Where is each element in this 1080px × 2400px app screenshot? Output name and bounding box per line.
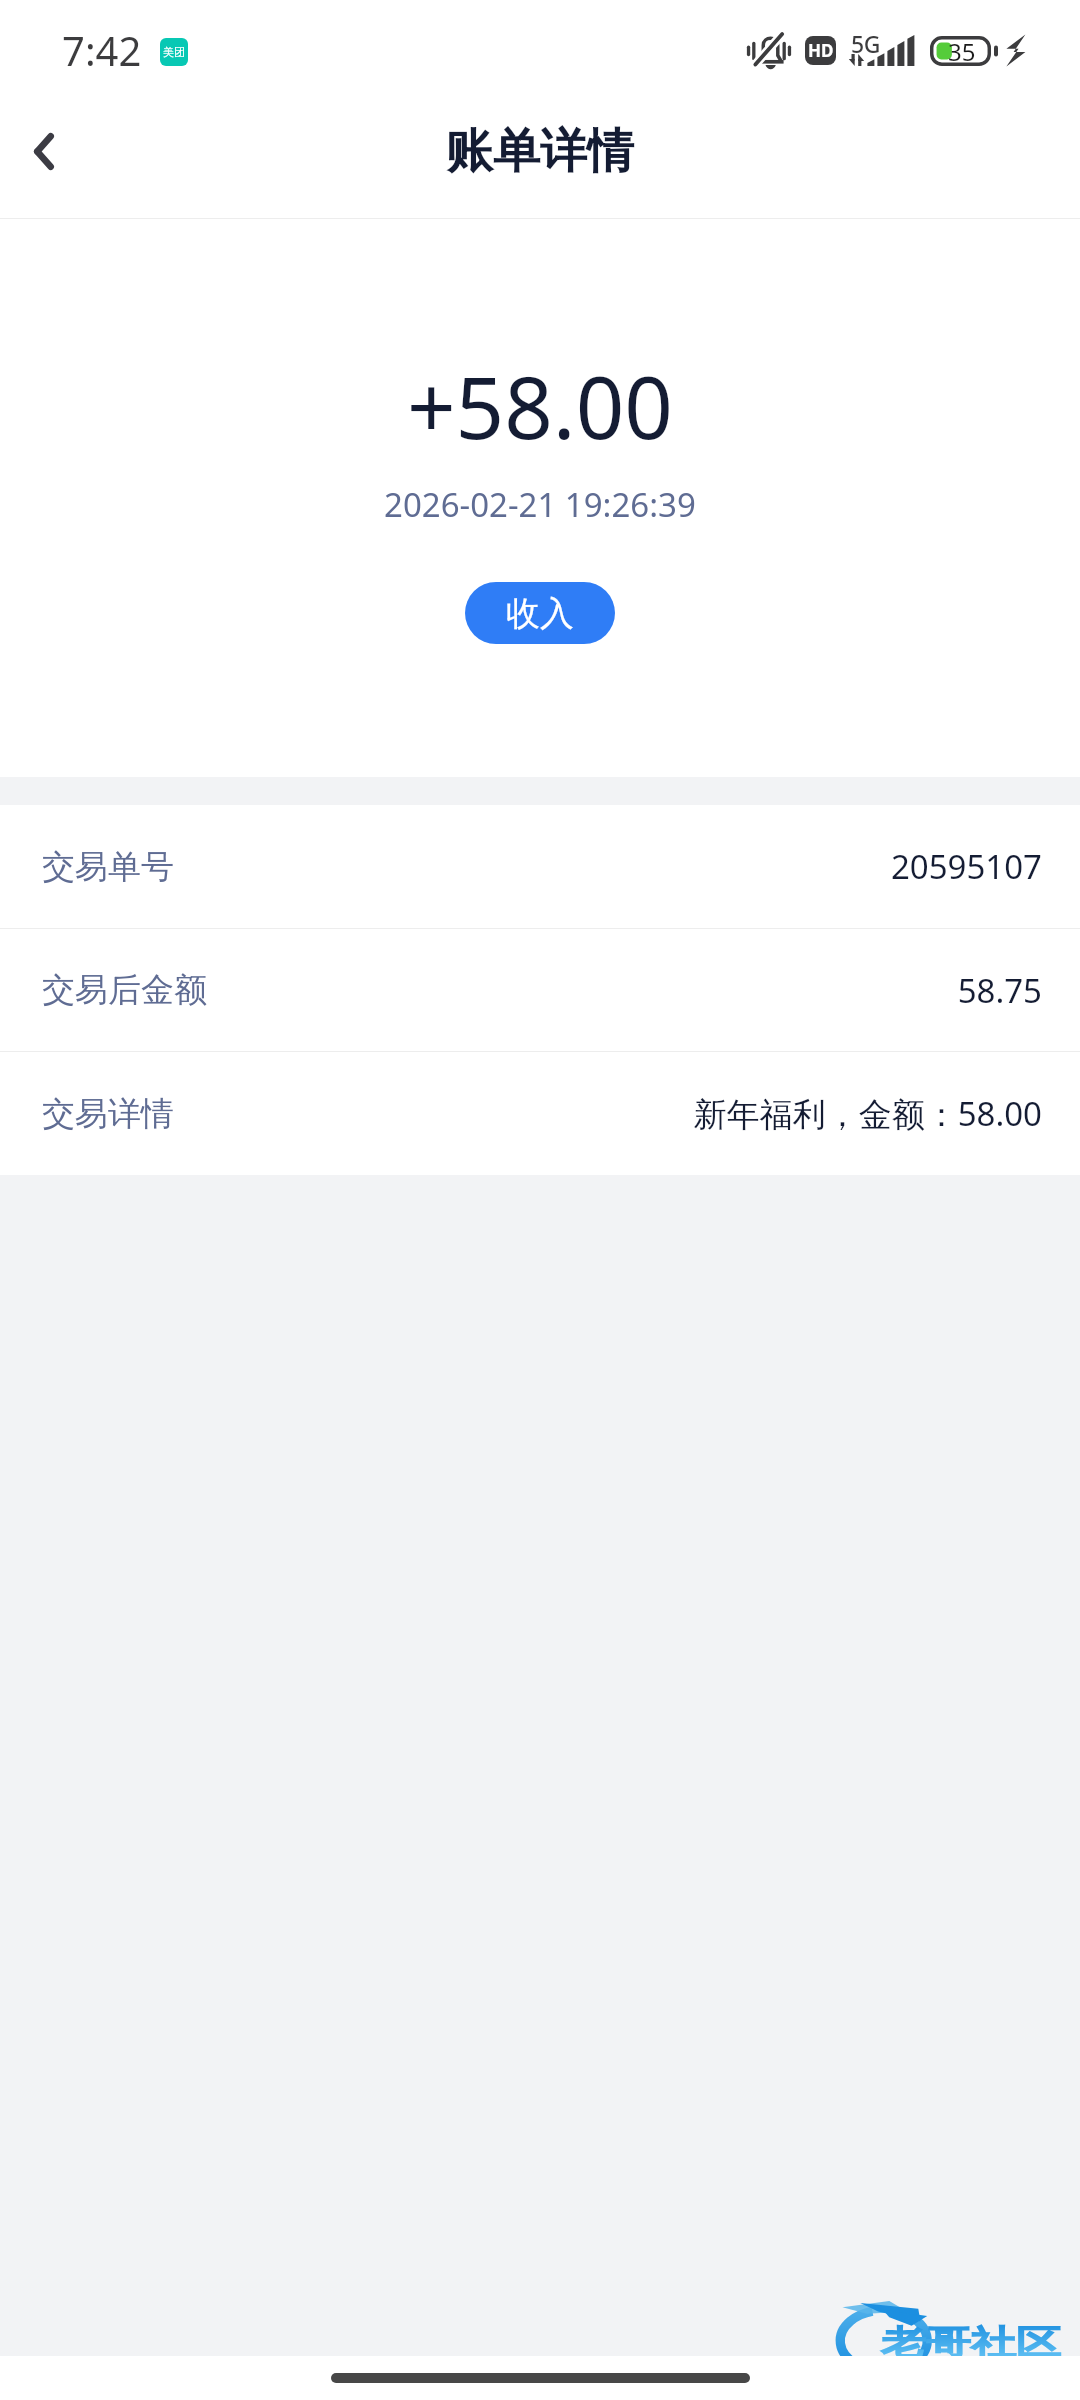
staticText: 5G (851, 28, 880, 59)
staticText: 新年福利，金额：58.00 (693, 1091, 1042, 1136)
staticText: 美团 (163, 45, 185, 59)
staticText: 交易详情 (42, 1093, 174, 1135)
staticText: 58.75 (957, 968, 1042, 1013)
button[interactable]: 交易单号 (0, 805, 1080, 928)
staticText: 20595107 (890, 844, 1042, 889)
staticText: 老哥社区 (881, 2322, 1061, 2364)
staticText: 2026-02-21 19:26:39 (384, 482, 696, 527)
staticText: 7:42 (62, 23, 142, 77)
button[interactable]: 交易详情 (0, 1052, 1080, 1175)
staticText: 35 (948, 35, 976, 65)
staticText: +58.00 (407, 348, 673, 464)
staticText: 交易后金额 (42, 969, 207, 1011)
staticText: 交易单号 (42, 846, 174, 888)
button[interactable]: 收入 (465, 582, 615, 644)
staticText: 收入 (506, 592, 574, 635)
button[interactable]: Back (0, 100, 96, 218)
staticText: HD (808, 39, 834, 62)
staticText: 账单详情 (446, 122, 634, 181)
staticText: LAOGESHEQU (930, 2352, 1048, 2370)
button[interactable]: 交易后金额 (0, 929, 1080, 1051)
